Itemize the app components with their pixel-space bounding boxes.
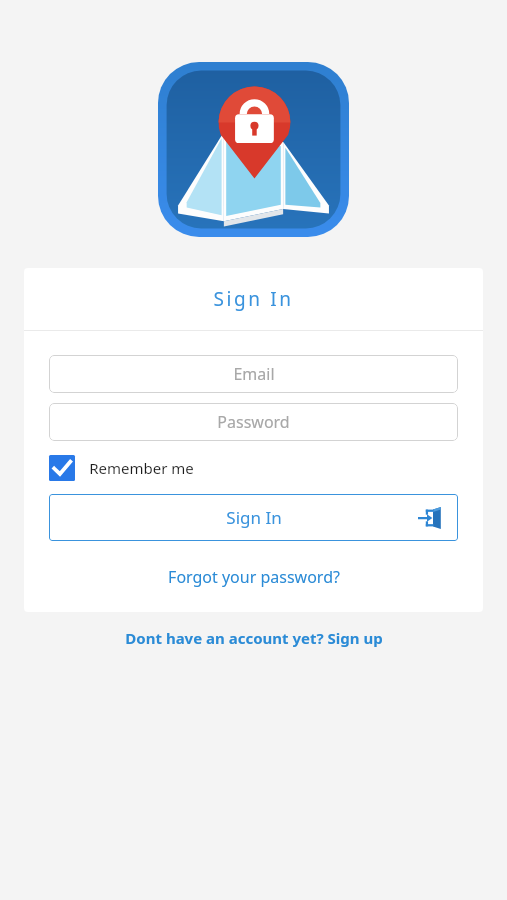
button[interactable]: Remember me checkbox	[49, 455, 194, 481]
staticText: Sign In	[213, 286, 294, 312]
staticText: Email	[233, 363, 275, 385]
staticText: Remember me	[89, 458, 194, 478]
button[interactable]: Forgot your password?	[24, 566, 483, 588]
button[interactable]: Dont have an account yet? Sign up	[0, 628, 507, 648]
staticText: Dont have an account yet? Sign up	[125, 628, 383, 648]
staticText: Sign In	[226, 506, 282, 529]
staticText: Password	[217, 411, 290, 433]
button[interactable]: Sign In	[49, 494, 458, 541]
staticText: Forgot your password?	[168, 566, 340, 588]
button[interactable]: Password	[49, 403, 458, 441]
button[interactable]: Remember me checkbox	[49, 455, 75, 481]
button[interactable]: Email	[49, 355, 458, 393]
other: Sign In	[415, 503, 445, 533]
